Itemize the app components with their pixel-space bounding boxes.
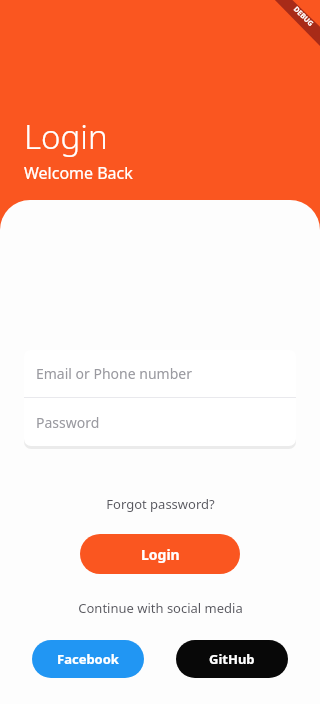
staticText: Email or Phone number bbox=[36, 364, 192, 383]
button[interactable]: Facebook bbox=[32, 640, 144, 678]
button[interactable]: Password bbox=[24, 398, 296, 446]
staticText: Forgot password? bbox=[106, 495, 215, 513]
staticText: DEBUG bbox=[291, 5, 316, 29]
staticText: Login bbox=[24, 114, 108, 159]
staticText: Login bbox=[141, 545, 180, 564]
button[interactable]: GitHub bbox=[176, 640, 288, 678]
button[interactable]: Email or Phone number bbox=[24, 350, 296, 397]
button[interactable]: Login bbox=[80, 534, 240, 574]
staticText: Facebook bbox=[57, 650, 119, 668]
other: Debug banner bbox=[274, 0, 320, 46]
staticText: Continue with social media bbox=[78, 599, 243, 617]
button[interactable]: Forgot password? bbox=[98, 492, 223, 516]
staticText: Welcome Back bbox=[24, 162, 133, 184]
staticText: GitHub bbox=[209, 650, 255, 668]
staticText: Password bbox=[36, 413, 100, 432]
